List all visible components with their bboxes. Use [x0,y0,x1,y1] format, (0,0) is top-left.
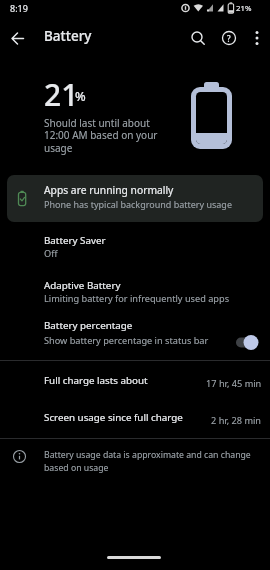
staticText: 21% [236,3,252,14]
staticText: Show battery percentage in status bar [44,334,209,347]
staticText: Phone has typical background battery usa… [44,198,232,210]
staticText: Off [44,247,58,260]
button[interactable]: Apps are running normally [7,175,263,222]
staticText: Adaptive Battery [44,279,121,292]
staticText: Battery usage data is approximate and ca… [44,449,251,473]
staticText: Apps are running normally [44,183,174,197]
staticText: % [75,88,86,105]
staticText: Screen usage since full charge [44,411,183,424]
button[interactable]: Battery percentage [0,312,270,356]
button[interactable]: ? [220,29,238,47]
staticText: 21 [44,74,79,115]
staticText: Full charge lasts about [44,374,148,387]
button[interactable]: Adaptive Battery [0,273,270,313]
staticText: Should last until about 12:00 AM based o… [44,116,158,155]
button[interactable]: Screen usage since full charge [0,403,270,433]
staticText: 8:19 [10,2,28,14]
staticText: Limiting battery for infrequently used a… [44,292,230,305]
staticText: 2 hr, 28 min [211,414,262,427]
button[interactable] [6,26,31,51]
button[interactable]: Battery Saver [0,228,270,268]
staticText: ? [227,33,231,44]
button[interactable] [189,29,207,47]
button[interactable]: Full charge lasts about [0,366,270,396]
button[interactable] [248,28,266,48]
button[interactable] [234,335,260,351]
staticText: 17 hr, 45 min [206,377,262,390]
staticText: Battery Saver [44,234,106,247]
staticText: Battery percentage [44,319,133,332]
staticText: Battery [44,27,92,45]
